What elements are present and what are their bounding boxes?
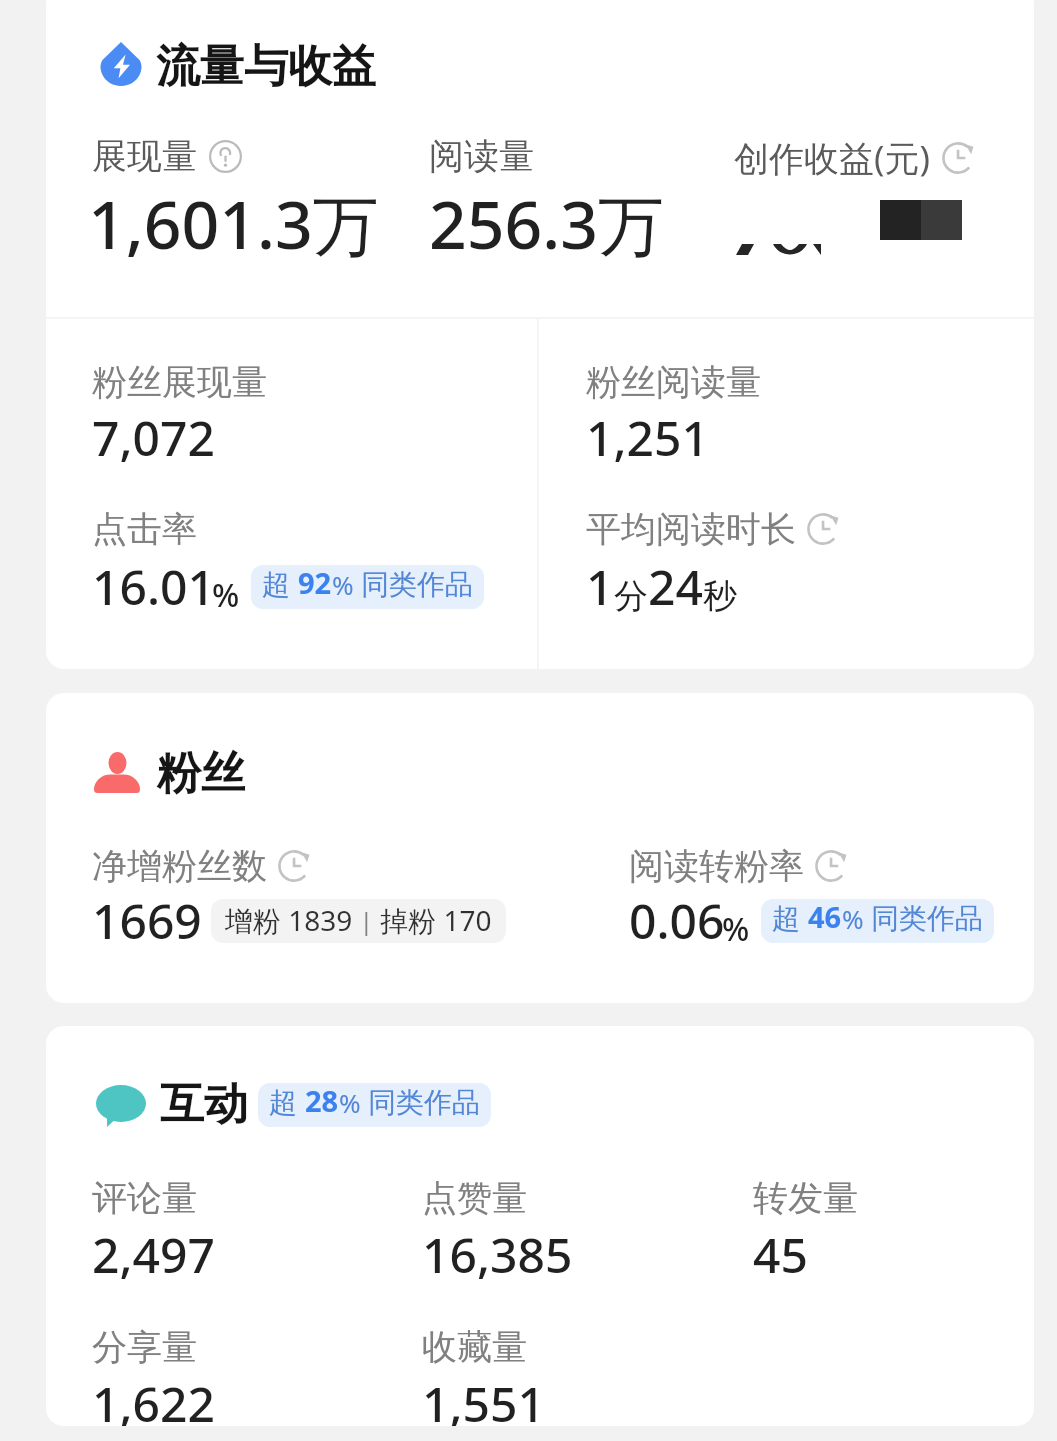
staticText: 1 (586, 554, 614, 619)
staticText: 24 (648, 554, 703, 619)
button[interactable]: 点赞量 (422, 1176, 753, 1287)
button[interactable]: 超 (251, 565, 484, 609)
staticText: 1,251 (586, 405, 709, 470)
staticText: 1669 (92, 888, 202, 953)
staticText: 评论量 (92, 1176, 197, 1220)
staticText: 256.3万 (429, 178, 664, 268)
staticText: % (212, 573, 240, 617)
staticText: 创作收益(元) (734, 134, 931, 182)
staticText: 92 (298, 565, 332, 602)
staticText: | (360, 905, 373, 936)
staticText: 同类作品 (368, 1085, 480, 1120)
staticText: 分享量 (92, 1325, 197, 1369)
button[interactable]: 收藏量 (422, 1325, 753, 1426)
button[interactable]: 评论量 (92, 1176, 422, 1287)
staticText: % (339, 1085, 368, 1120)
button[interactable]: 超 (258, 1083, 491, 1127)
staticText: 点赞量 (422, 1176, 527, 1220)
button[interactable]: 互动 (92, 1077, 491, 1132)
staticText: % (842, 901, 871, 936)
staticText: 转发量 (753, 1176, 858, 1220)
staticText: 秒 (703, 575, 737, 618)
staticText: 增粉 1839 (225, 901, 360, 939)
staticText: 1,601.3万 (88, 178, 379, 268)
staticText: 展现量 (92, 134, 197, 178)
button[interactable]: 净增粉丝数 (92, 844, 629, 953)
staticText: 粉丝展现量 (92, 360, 267, 404)
staticText: 点击率 (92, 507, 197, 551)
staticText: % (332, 567, 361, 602)
button[interactable]: 超 (761, 899, 994, 943)
staticText: 1,551 (422, 1371, 545, 1426)
button[interactable]: 数据更新说明 (816, 850, 848, 882)
staticText: % (722, 907, 750, 951)
button[interactable]: 数据更新说明 (279, 850, 311, 882)
staticText: 超 (262, 565, 298, 602)
staticText: 45 (753, 1222, 808, 1287)
staticText: 2,497 (92, 1222, 215, 1287)
staticText: 收藏量 (422, 1325, 527, 1369)
staticText: 净增粉丝数 (92, 844, 267, 888)
staticText: 阅读转粉率 (629, 844, 804, 888)
staticText: 16,385 (422, 1222, 573, 1287)
button[interactable]: 流量与收益 (46, 40, 376, 95)
staticText: 超 (269, 1083, 305, 1120)
staticText: 同类作品 (361, 567, 473, 602)
button[interactable]: 展现量 (92, 134, 429, 270)
staticText: 分 (614, 575, 648, 618)
staticText: 平均阅读时长 (586, 507, 796, 551)
staticText: 7,072 (92, 405, 215, 470)
staticText: 掉粉 170 (373, 901, 492, 939)
button[interactable]: 指标说明 (209, 140, 242, 173)
button[interactable]: 转发量 (753, 1176, 858, 1287)
staticText: 0.06 (629, 888, 725, 953)
staticText: 1,622 (92, 1371, 215, 1426)
staticText: 互动 (160, 1077, 248, 1132)
button[interactable]: 粉丝展现量 (46, 319, 537, 619)
staticText: 流量与收益 (156, 39, 376, 94)
button[interactable]: 粉丝阅读量 (539, 319, 840, 619)
button[interactable]: 数据更新说明 (808, 513, 840, 545)
staticText: 28 (305, 1083, 339, 1120)
button[interactable]: 数据更新说明 (943, 142, 975, 174)
staticText: 粉丝阅读量 (586, 360, 761, 404)
staticText: 粉丝 (157, 746, 245, 801)
staticText: 超 (772, 899, 808, 936)
staticText: 阅读量 (429, 134, 534, 178)
staticText: 同类作品 (871, 901, 983, 936)
staticText: 16.01 (92, 554, 215, 619)
button[interactable]: 阅读量 (429, 134, 734, 270)
staticText: 46 (808, 899, 842, 936)
button[interactable]: 分享量 (92, 1325, 422, 1426)
button[interactable]: 粉丝 (92, 746, 245, 801)
